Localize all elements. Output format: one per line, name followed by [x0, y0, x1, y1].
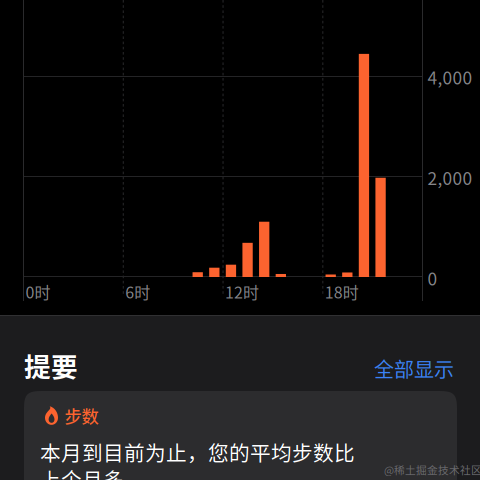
staticText: 全部显示: [374, 354, 454, 383]
staticText: 0: [427, 265, 437, 291]
staticText: 步数: [64, 403, 98, 428]
staticText: 12时: [225, 280, 259, 303]
staticText: 4,000: [427, 64, 472, 90]
staticText: 0时: [26, 280, 51, 303]
staticText: 18时: [325, 280, 359, 303]
staticText: 本月到目前为止，您的平均步数比上个月多: [40, 437, 355, 480]
staticText: 提要: [24, 346, 78, 385]
staticText: 2,000: [427, 165, 472, 190]
staticText: 6时: [125, 280, 150, 303]
staticText: @稀土掘金技术社区: [384, 462, 480, 477]
button[interactable]: 步数: [24, 391, 457, 480]
button[interactable]: 全部显示: [366, 349, 462, 388]
